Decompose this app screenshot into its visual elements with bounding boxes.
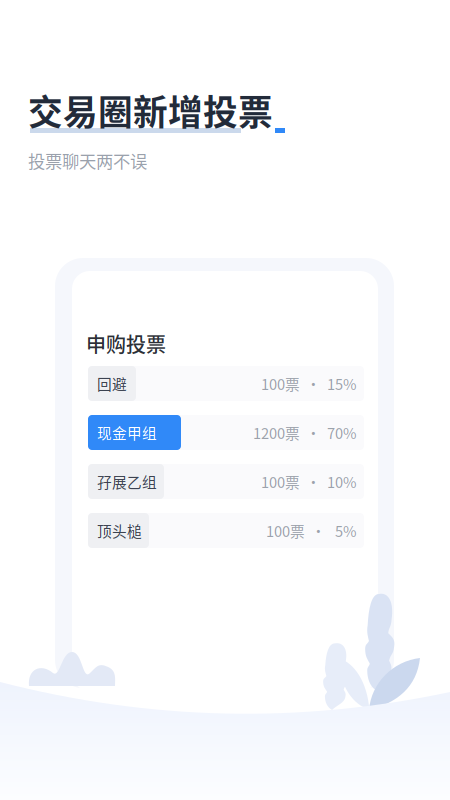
staticText: 投票聊天两不误 xyxy=(28,148,147,173)
staticText: 1200票 · 70% xyxy=(253,422,357,443)
staticText: 100票 · 5% xyxy=(266,520,357,541)
staticText: 申购投票 xyxy=(86,329,166,358)
staticText: 现金甲组 xyxy=(97,422,157,443)
staticText: 交易圈新增投票 xyxy=(28,85,273,135)
button[interactable]: 现金甲组 xyxy=(88,415,364,450)
staticText: 顶头槌 xyxy=(97,520,142,541)
staticText: 100票 · 15% xyxy=(261,373,357,394)
button[interactable]: 回避 xyxy=(88,366,364,401)
staticText: 孖展乙组 xyxy=(97,471,157,492)
button[interactable]: 孖展乙组 xyxy=(88,464,364,499)
staticText: 回避 xyxy=(97,373,127,394)
button[interactable]: 顶头槌 xyxy=(88,513,364,548)
staticText: 100票 · 10% xyxy=(261,471,357,492)
